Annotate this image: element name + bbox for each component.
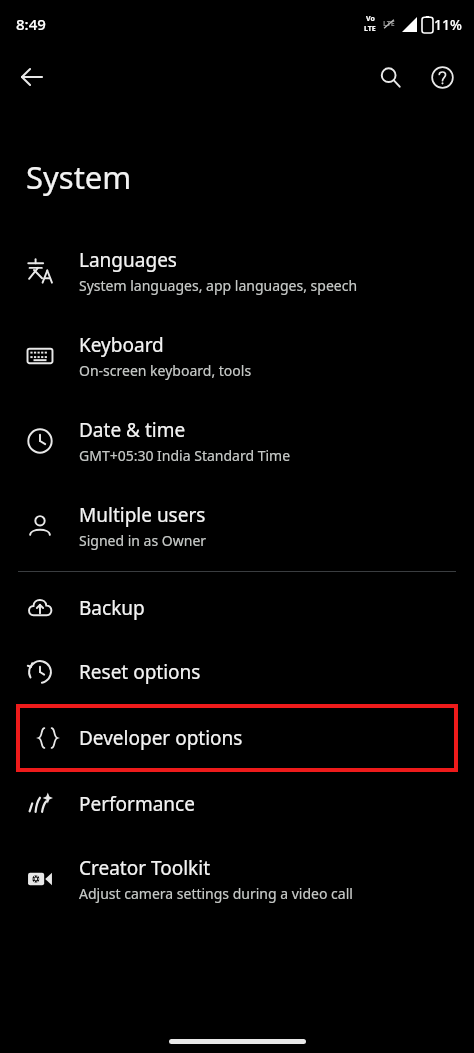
staticText: LTE [364, 24, 376, 34]
staticText: Vo [366, 14, 375, 24]
staticText: Performance [79, 791, 195, 817]
staticText: Signed in as Owner [79, 531, 207, 550]
staticText: Creator Toolkit [79, 855, 211, 881]
button[interactable]: Reset options [0, 640, 474, 704]
staticText: 8:49 [16, 14, 46, 34]
staticText: LTE [383, 19, 395, 29]
staticText: Adjust camera settings during a video ca… [79, 884, 353, 903]
staticText: Date & time [79, 417, 186, 443]
staticText: Developer options [79, 725, 243, 751]
button[interactable]: Search [368, 55, 412, 99]
staticText: Keyboard [79, 332, 164, 358]
button[interactable]: Creator Toolkit [0, 836, 474, 921]
staticText: System languages, app languages, speech [79, 276, 358, 295]
button[interactable]: Developer options [16, 704, 458, 772]
staticText: System [26, 156, 132, 198]
button[interactable]: Back [10, 55, 54, 99]
staticText: Reset options [79, 659, 201, 685]
button[interactable]: Date & time [0, 398, 474, 483]
button[interactable]: Help [420, 55, 464, 99]
button[interactable]: Languages [0, 228, 474, 313]
staticText: Multiple users [79, 502, 206, 528]
staticText: Languages [79, 247, 177, 273]
button[interactable]: Performance [0, 772, 474, 836]
staticText: On-screen keyboard, tools [79, 361, 252, 380]
button[interactable]: Multiple users [0, 483, 474, 568]
staticText: GMT+05:30 India Standard Time [79, 446, 291, 465]
button[interactable]: Keyboard [0, 313, 474, 398]
button[interactable]: Backup [0, 576, 474, 640]
staticText: Backup [79, 595, 145, 621]
staticText: 11% [434, 15, 462, 34]
